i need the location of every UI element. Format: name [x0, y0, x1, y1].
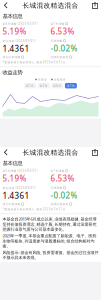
staticText: 业绩比较基准 [50, 55, 68, 59]
button[interactable]: Share [89, 0, 101, 11]
staticText: 近1年涨幅 [50, 169, 64, 172]
button[interactable]: Back [0, 0, 12, 11]
staticText: 1.4361 [2, 190, 29, 201]
staticText: * 数据来源于基金管理人, 截至2023年3月31日 [2, 207, 65, 211]
button[interactable]: 近1年 [65, 83, 77, 88]
staticText: 近6月涨幅 (2023/03/31) [2, 22, 37, 25]
staticText: 收益走势 [2, 69, 22, 76]
staticText: 5.19% [2, 173, 26, 184]
staticText: 近1年 [67, 84, 75, 87]
staticText: 6.53% [50, 26, 74, 37]
button[interactable]: 近1月 [24, 83, 36, 88]
staticText: -0.02% [50, 43, 77, 54]
staticText: 6.53% [50, 173, 74, 184]
staticText: 单位净值 (2023/03/31) [2, 186, 35, 190]
staticText: * 数据来源于基金管理人, 截至2023年3月31日 [2, 60, 65, 64]
button[interactable]: Share [89, 147, 101, 158]
staticText: -0.02% [50, 190, 77, 201]
staticText: 本基金 [38, 78, 47, 81]
staticText: 近1年涨幅 [50, 22, 64, 25]
staticText: 1.4361 [2, 43, 29, 54]
staticText: 本基金自2015年6月成立以来, 业绩表现稳健, 基金经理坚持价值投资理念, 精… [2, 216, 96, 232]
staticText: 2023年一季度, 本基金重点配置了新能源、电子、医药生物等板块, 并适度参与港… [2, 233, 96, 248]
button[interactable]: 近3月 [38, 83, 50, 88]
button[interactable]: 近6月 [51, 83, 63, 88]
staticText: 日涨跌幅 [50, 186, 62, 189]
staticText: 长城混改精选混合 [22, 148, 78, 157]
staticText: 单位净值 (2023/03/31) [2, 39, 35, 43]
staticText: 近6月涨幅 (2023/03/31) [2, 169, 37, 172]
staticText: 日涨跌幅 [50, 39, 62, 42]
staticText: 5.19% [2, 26, 26, 37]
staticText: 业绩比较基准 [50, 202, 68, 206]
button[interactable]: Back [0, 147, 12, 158]
staticText: 近6月 [53, 84, 61, 87]
staticText: 业绩基准 [54, 78, 66, 81]
staticText: 成立以来涨幅 [2, 202, 20, 206]
staticText: 基本信息 [2, 13, 22, 20]
staticText: 成立以来涨幅 [2, 55, 20, 59]
staticText: 基本信息 [2, 160, 22, 167]
staticText: 近1月 [26, 84, 34, 87]
staticText: 近3月 [40, 84, 48, 87]
staticText: 风险提示: 基金有风险, 投资需谨慎。基金的过往业绩并不预示其未来表现。 [2, 250, 98, 260]
staticText: 长城混改精选混合 [22, 1, 78, 10]
